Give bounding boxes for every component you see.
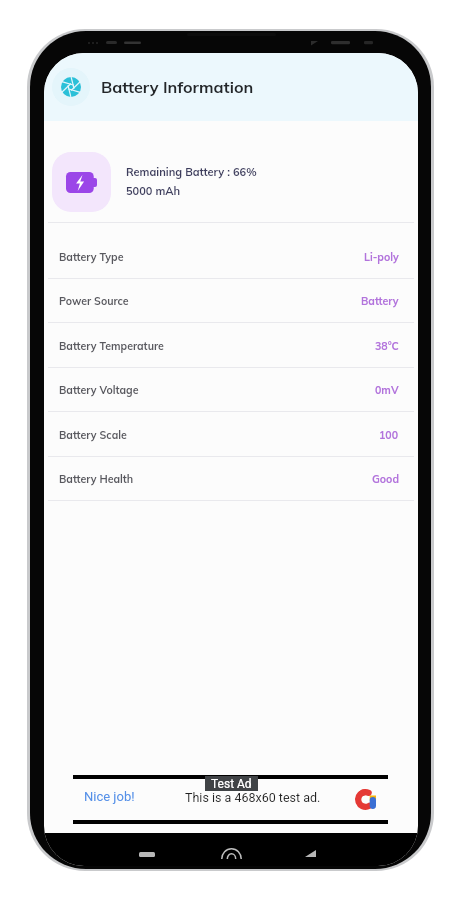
staticText: Battery Type [59,250,124,263]
staticText: Battery [361,294,399,307]
staticText: Test Ad [211,777,252,791]
staticText: Battery Temperature [59,339,164,352]
staticText: Li-poly [364,250,399,263]
staticText: Nice job! [84,789,135,804]
staticText: Remaining Battery : 66% [126,165,257,179]
staticText: Good [372,472,399,485]
staticText: Battery Voltage [59,383,139,396]
button[interactable]: Battery Type [44,234,418,278]
button[interactable]: Back [292,838,328,863]
button[interactable]: App icon [44,53,418,121]
button[interactable]: App icon [52,68,90,106]
staticText: Battery Scale [59,428,127,441]
staticText: Battery Information [101,77,254,97]
button[interactable]: Recents [129,838,165,863]
button[interactable]: Battery Scale [44,412,418,456]
button[interactable]: Remaining Battery : 66% [44,121,418,222]
button[interactable]: Battery Health [44,457,418,500]
button[interactable]: Power Source [44,279,418,322]
staticText: 38°C [375,339,399,352]
button[interactable]: Nice job! [73,775,388,824]
staticText: 100 [379,428,399,441]
button[interactable]: Battery Temperature [44,323,418,367]
button[interactable]: Home [213,838,249,863]
staticText: Power Source [59,294,129,307]
staticText: This is a 468x60 test ad. [185,790,321,805]
staticText: 5000 mAh [126,184,181,198]
button[interactable]: Battery Voltage [44,368,418,411]
staticText: Battery Health [59,472,134,485]
staticText: 0mV [375,383,399,396]
